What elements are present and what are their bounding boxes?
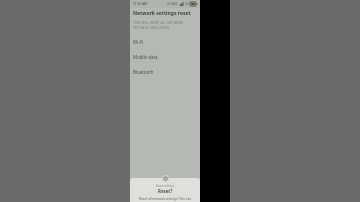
staticText: THIS WILL RESET ALL NETWORK SETTINGS, IN…: [133, 20, 197, 30]
staticText: 11:55 AM: [133, 2, 148, 6]
staticText: Reset all network settings? You can: [139, 197, 192, 201]
staticText: Network settings reset: [133, 10, 191, 17]
staticText: Reset?: [158, 188, 173, 194]
button[interactable]: [130, 178, 200, 202]
button[interactable]: Mobile data: [130, 49, 200, 64]
staticText: 46: [185, 2, 189, 6]
staticText: Reset settings: [156, 184, 174, 188]
button[interactable]: Wi-Fi: [130, 34, 200, 49]
button[interactable]: Bluetooth: [130, 64, 200, 79]
staticText: Wi-Fi: [133, 39, 144, 45]
staticText: Mobile data: [133, 54, 158, 60]
other: Reset settings icon: [162, 175, 169, 182]
staticText: 4.0 KB/s: [167, 2, 178, 6]
staticText: Bluetooth: [133, 69, 154, 75]
